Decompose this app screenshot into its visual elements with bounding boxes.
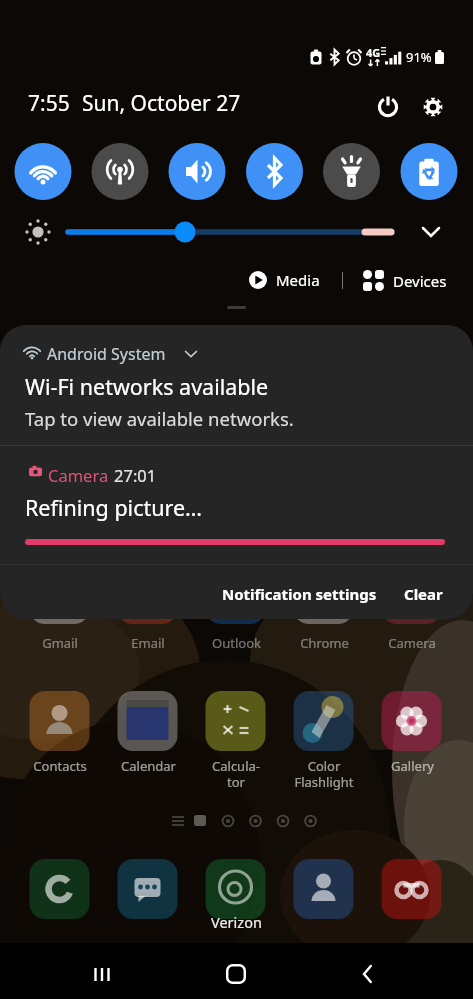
button[interactable]: Expand quick settings	[411, 212, 451, 252]
staticText: Contacts	[33, 757, 87, 775]
staticText: Refining picture…	[25, 493, 203, 522]
button[interactable]: Settings	[413, 86, 453, 126]
button[interactable]: Devices	[358, 265, 452, 296]
button[interactable]: Clear	[396, 575, 451, 613]
button[interactable]: Android System	[0, 325, 473, 445]
staticText: 91%	[406, 48, 432, 66]
staticText: Email	[131, 634, 165, 652]
staticText: Verizon	[211, 912, 262, 932]
staticText: Devices	[393, 271, 447, 291]
button[interactable]: Outlook	[192, 634, 280, 652]
staticText: Clear	[404, 584, 443, 604]
staticText: Sun, October 27	[82, 89, 241, 118]
button[interactable]: Bluetooth	[246, 143, 303, 200]
staticText: Camera	[388, 634, 436, 652]
button[interactable]: Sound	[169, 143, 226, 200]
button[interactable]: Camera	[368, 634, 456, 652]
button[interactable]: Calcula- tor	[192, 757, 280, 790]
button[interactable]: Recents	[82, 954, 122, 994]
button[interactable]: Power saving	[401, 143, 458, 200]
button[interactable]: Notification settings	[214, 575, 385, 613]
staticText: Notification settings	[222, 584, 377, 604]
button[interactable]: Home	[214, 952, 258, 996]
button[interactable]: Flashlight	[323, 143, 380, 200]
button[interactable]: Camera	[0, 446, 473, 564]
button[interactable]: Gallery	[368, 757, 456, 775]
staticText: Chrome	[300, 634, 349, 652]
button[interactable]: Contacts	[16, 757, 104, 775]
staticText: Android System	[47, 343, 166, 365]
staticText: Tap to view available networks.	[25, 406, 294, 431]
staticText: Camera	[48, 464, 109, 486]
staticText: 27:01	[114, 464, 157, 486]
button[interactable]: Back	[348, 954, 388, 994]
button[interactable]: Calendar	[104, 757, 192, 775]
staticText: 7:55	[28, 89, 70, 118]
button[interactable]: Email	[104, 634, 192, 652]
button[interactable]: Gmail	[16, 634, 104, 652]
button[interactable]: Color Flashlight	[280, 757, 368, 790]
staticText: Calendar	[121, 757, 176, 775]
staticText: Outlook	[212, 634, 261, 652]
staticText: Calcula- tor	[212, 757, 260, 790]
staticText: Media	[276, 270, 320, 290]
button[interactable]: Wi-Fi	[15, 143, 72, 200]
staticText: Gmail	[42, 634, 78, 652]
staticText: Gallery	[391, 757, 434, 775]
staticText: 4G	[366, 45, 381, 60]
button[interactable]: Power	[368, 86, 408, 126]
staticText: Wi-Fi networks available	[25, 372, 269, 401]
button[interactable]: Chrome	[280, 634, 368, 652]
button[interactable]: Mobile hotspot	[92, 143, 149, 200]
button[interactable]: Media	[244, 265, 325, 295]
button[interactable]: Brightness	[60, 214, 400, 250]
staticText: Color Flashlight	[294, 757, 354, 790]
